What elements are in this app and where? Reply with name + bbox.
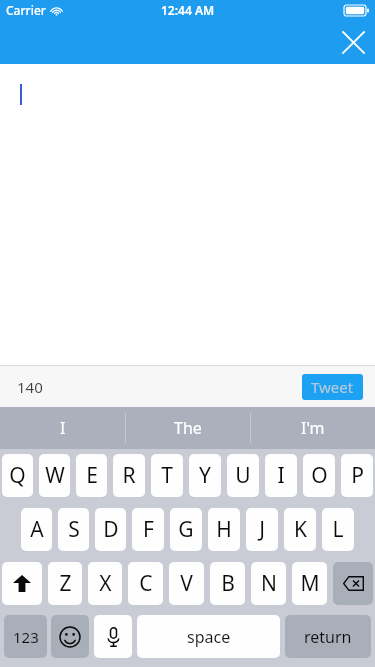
staticText: F xyxy=(143,515,154,544)
staticText: K xyxy=(294,515,307,544)
staticText: I xyxy=(277,461,285,490)
button[interactable]: Dictation xyxy=(94,615,132,658)
staticText: Q xyxy=(9,461,26,490)
button[interactable]: E xyxy=(76,454,107,497)
staticText: Tweet xyxy=(311,377,354,397)
staticText: X xyxy=(99,569,112,598)
button[interactable]: Z xyxy=(48,562,82,605)
staticText: H xyxy=(216,515,232,544)
staticText: Carrier xyxy=(6,2,46,18)
button[interactable]: F xyxy=(132,508,164,551)
button[interactable]: U xyxy=(227,454,259,497)
button[interactable]: D xyxy=(95,508,126,551)
staticText: C xyxy=(139,569,153,598)
button[interactable]: G xyxy=(170,508,202,551)
button[interactable]: Q xyxy=(2,454,33,497)
staticText: D xyxy=(103,515,119,544)
button[interactable]: Y xyxy=(189,454,221,497)
button[interactable]: Backspace xyxy=(333,562,373,605)
staticText: M xyxy=(300,569,320,598)
staticText: return xyxy=(304,626,352,648)
button[interactable]: S xyxy=(58,508,89,551)
staticText: A xyxy=(30,515,44,544)
staticText: 123 xyxy=(13,627,39,647)
button[interactable]: 123 xyxy=(4,615,47,658)
staticText: V xyxy=(180,569,193,598)
staticText: S xyxy=(68,515,80,544)
staticText: P xyxy=(351,461,364,490)
button[interactable]: T xyxy=(151,454,183,497)
staticText: I xyxy=(60,417,66,439)
staticText: G xyxy=(178,515,194,544)
button[interactable]: V xyxy=(169,562,204,605)
button[interactable]: M xyxy=(292,562,327,605)
staticText: I'm xyxy=(301,417,325,439)
button[interactable]: A xyxy=(21,508,52,551)
staticText: The xyxy=(174,417,202,439)
staticText: O xyxy=(311,461,328,490)
staticText: space xyxy=(187,626,231,648)
button[interactable]: Emoji xyxy=(51,615,89,658)
button[interactable]: K xyxy=(284,508,316,551)
button[interactable]: I xyxy=(265,454,297,497)
button[interactable]: H xyxy=(208,508,240,551)
button[interactable]: I xyxy=(0,407,125,449)
staticText: R xyxy=(122,461,136,490)
button[interactable]: I'm xyxy=(251,407,375,449)
button[interactable]: X xyxy=(88,562,122,605)
staticText: U xyxy=(235,461,251,490)
button[interactable]: P xyxy=(341,454,373,497)
button[interactable]: return xyxy=(285,615,371,658)
button[interactable]: W xyxy=(39,454,70,497)
button[interactable]: B xyxy=(210,562,245,605)
button[interactable]: Close xyxy=(331,20,375,64)
staticText: W xyxy=(45,461,65,490)
button[interactable]: N xyxy=(251,562,286,605)
staticText: N xyxy=(261,569,277,598)
button[interactable]: R xyxy=(113,454,145,497)
button[interactable]: L xyxy=(322,508,354,551)
staticText: L xyxy=(332,515,344,544)
staticText: T xyxy=(161,461,173,490)
button[interactable]: Tweet xyxy=(302,374,363,400)
button[interactable]: Shift xyxy=(2,562,42,605)
button[interactable]: The xyxy=(126,407,250,449)
staticText: Z xyxy=(59,569,72,598)
staticText: B xyxy=(221,569,235,598)
staticText: J xyxy=(259,515,265,544)
button[interactable]: C xyxy=(128,562,163,605)
button[interactable]: O xyxy=(303,454,335,497)
staticText: 12:44 AM xyxy=(161,2,215,18)
staticText: Y xyxy=(199,461,211,490)
staticText: 140 xyxy=(17,377,43,397)
staticText: E xyxy=(86,461,98,490)
button[interactable]: J xyxy=(246,508,278,551)
button[interactable]: space xyxy=(137,615,280,658)
